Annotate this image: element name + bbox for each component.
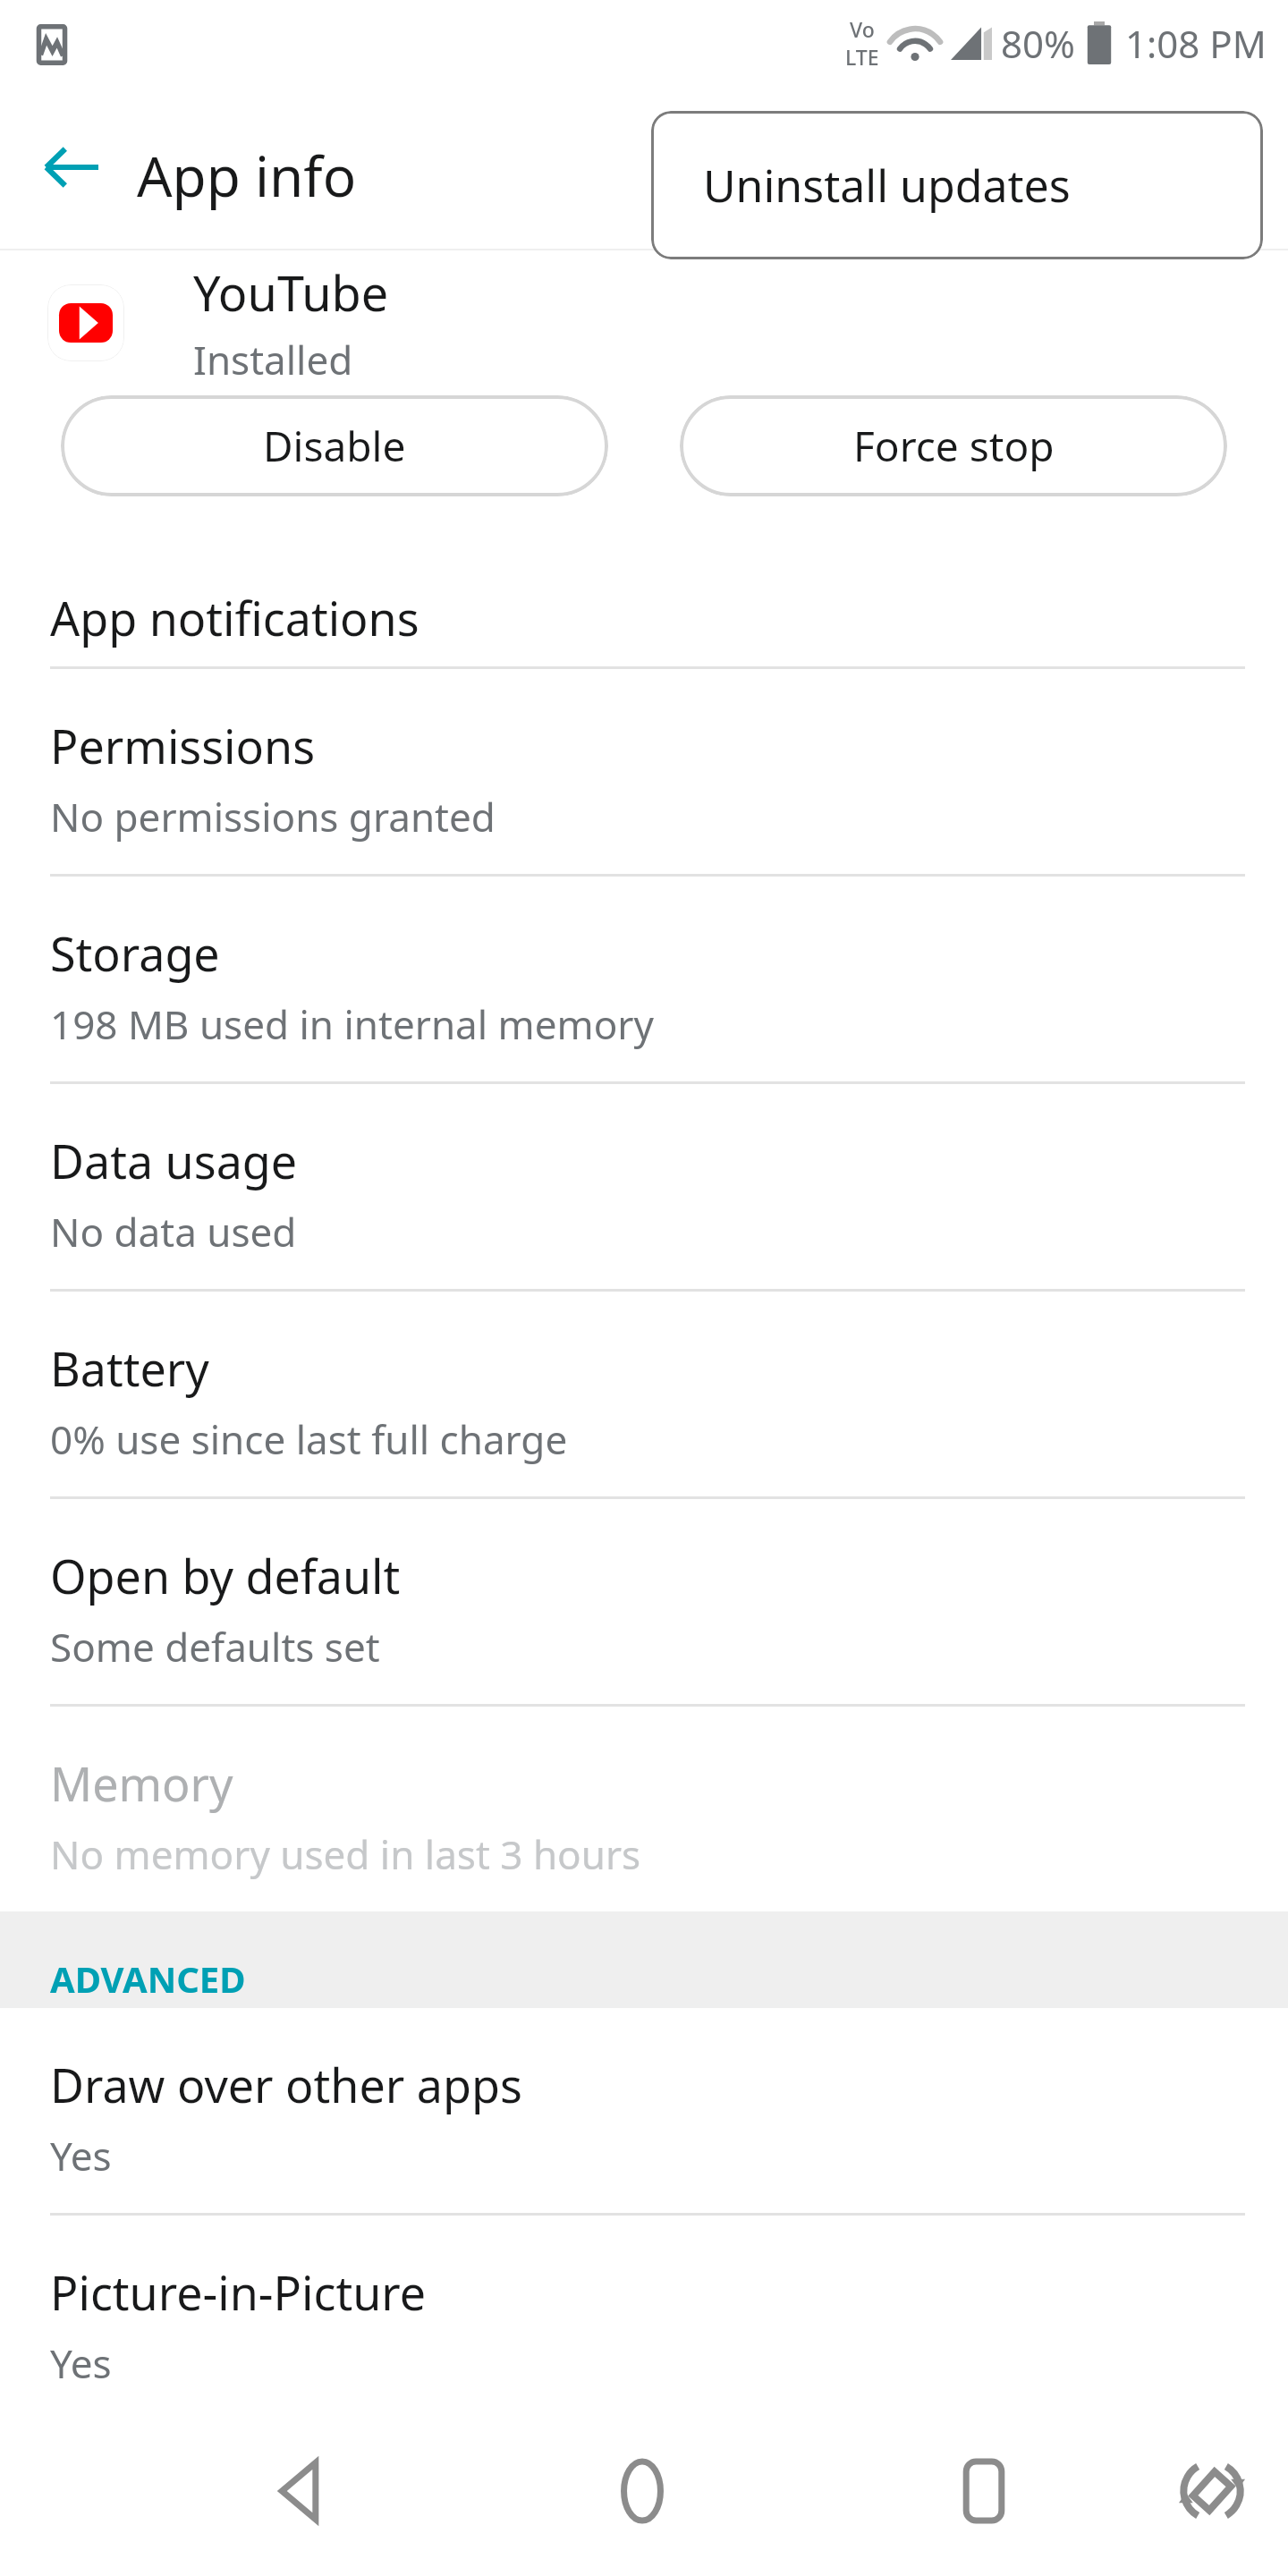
staticText: 198 MB used in internal memory	[50, 997, 654, 1051]
staticText: Permissions	[50, 714, 316, 777]
button[interactable]: Back	[239, 2406, 364, 2576]
staticText: ADVANCED	[50, 1954, 246, 2003]
staticText: Force stop	[853, 418, 1055, 474]
button[interactable]: Recents	[921, 2406, 1046, 2576]
staticText: 80%	[1001, 18, 1075, 69]
staticText: App info	[137, 138, 357, 213]
staticText: 1:08 PM	[1125, 18, 1267, 69]
button[interactable]: Storage	[0, 877, 1288, 1081]
staticText: Memory	[50, 1751, 233, 1815]
button[interactable]: Rotate screen	[1149, 2406, 1275, 2576]
staticText: Battery	[50, 1336, 209, 1400]
staticText: No data used	[50, 1205, 297, 1258]
staticText: Storage	[50, 921, 220, 985]
button[interactable]: Home	[580, 2406, 705, 2576]
staticText: Yes	[50, 2129, 112, 2182]
staticText: Installed	[193, 333, 353, 386]
button[interactable]: Disable	[61, 395, 608, 496]
button[interactable]: Force stop	[680, 395, 1227, 496]
staticText: No memory used in last 3 hours	[50, 1827, 641, 1881]
button[interactable]: YouTube	[0, 250, 1288, 395]
staticText: Disable	[263, 418, 406, 474]
button[interactable]: Battery	[0, 1292, 1288, 1496]
button[interactable]: Uninstall updates	[651, 111, 1263, 259]
button[interactable]: Picture-in-Picture	[0, 2216, 1288, 2406]
staticText: LTE	[845, 43, 879, 71]
staticText: App notifications	[50, 586, 419, 649]
button[interactable]: Memory	[0, 1707, 1288, 1911]
staticText: Vo	[850, 15, 875, 43]
staticText: Open by default	[50, 1544, 401, 1607]
staticText: Yes	[50, 2336, 112, 2390]
staticText: Draw over other apps	[50, 2053, 522, 2116]
staticText: Some defaults set	[50, 1620, 380, 1674]
button[interactable]: Data usage	[0, 1084, 1288, 1289]
staticText: Picture-in-Picture	[50, 2260, 427, 2324]
button[interactable]: Open by default	[0, 1499, 1288, 1704]
staticText: Data usage	[50, 1129, 298, 1192]
staticText: No permissions granted	[50, 790, 496, 843]
staticText: 0% use since last full charge	[50, 1412, 568, 1466]
button[interactable]: App notifications	[0, 561, 1288, 666]
staticText: Uninstall updates	[703, 155, 1071, 216]
button[interactable]: Draw over other apps	[0, 2008, 1288, 2213]
button[interactable]: Permissions	[0, 669, 1288, 874]
staticText: YouTube	[193, 259, 389, 326]
button[interactable]: Back	[14, 111, 127, 224]
